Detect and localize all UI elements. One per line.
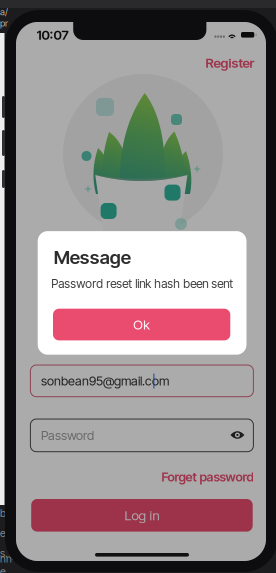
button[interactable]: Log in xyxy=(31,499,253,532)
staticText: Log in xyxy=(124,507,159,523)
staticText: s. xyxy=(0,546,8,559)
staticText: nne. xyxy=(0,552,15,573)
staticText: a/pr xyxy=(0,6,8,29)
staticText: Ok xyxy=(133,316,150,333)
staticText: sonbean95@gmail.com xyxy=(41,373,169,389)
button[interactable]: Register xyxy=(203,55,255,71)
staticText: Message xyxy=(54,246,131,268)
staticText: Password xyxy=(41,428,94,443)
button[interactable]: Ok xyxy=(53,309,230,340)
staticText: b xyxy=(0,506,6,519)
button[interactable]: Forget password xyxy=(143,469,253,485)
staticText: Password reset link hash been sent xyxy=(51,276,233,291)
staticText: Register xyxy=(206,55,255,71)
staticText: 10:07 xyxy=(37,27,69,43)
staticText: Forget password xyxy=(161,469,253,485)
button[interactable]: Show password xyxy=(227,428,247,442)
staticText: e xyxy=(0,526,6,539)
